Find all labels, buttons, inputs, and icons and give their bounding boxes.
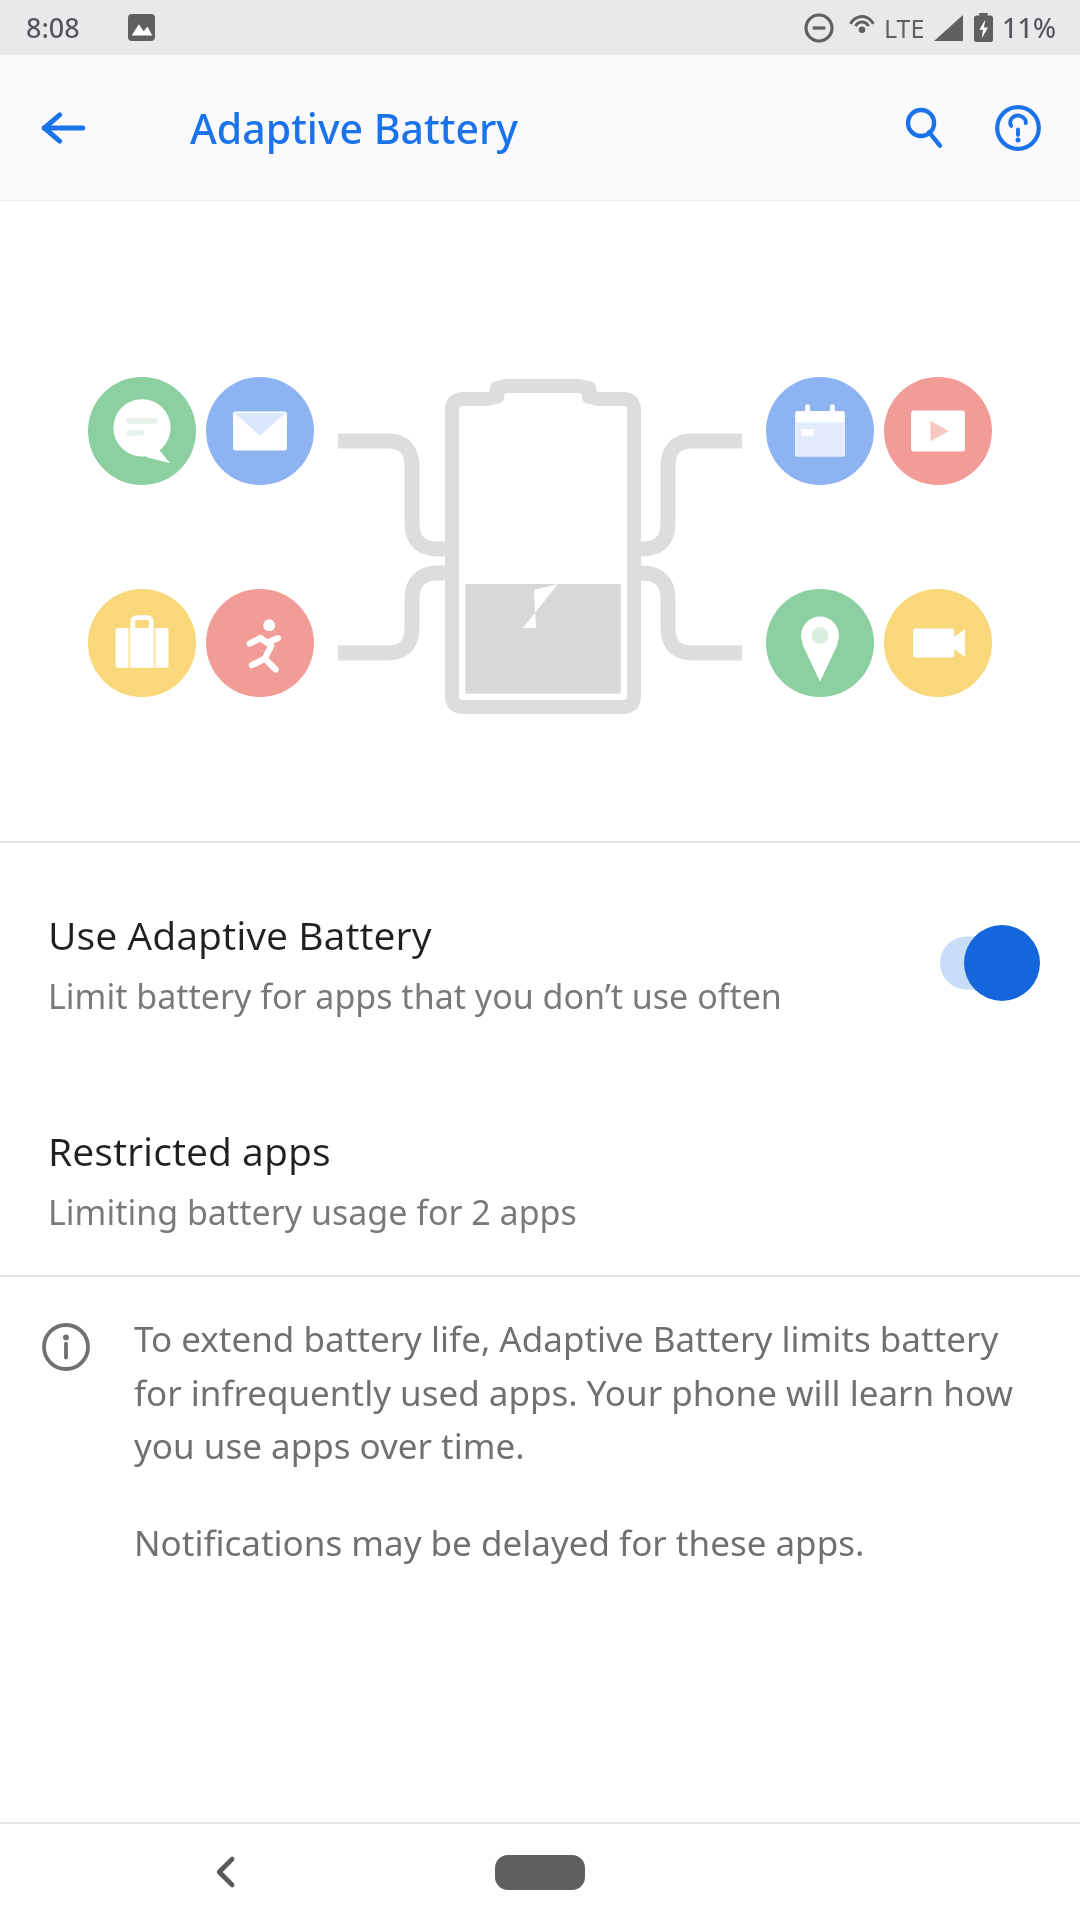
button[interactable]: Back: [190, 1836, 262, 1908]
other: Mail: [206, 377, 314, 485]
other: Play: [884, 377, 992, 485]
button[interactable]: Use Adaptive Battery: [0, 843, 1080, 1083]
button[interactable]: Restricted apps: [0, 1083, 1080, 1275]
other: Fitness: [206, 589, 314, 697]
staticText: Limiting battery usage for 2 apps: [48, 1189, 577, 1235]
staticText: LTE: [884, 11, 925, 45]
button[interactable]: Use Adaptive Battery toggle, on: [934, 917, 1046, 1009]
button[interactable]: Help: [978, 88, 1058, 168]
other: Work: [88, 589, 196, 697]
staticText: Use Adaptive Battery: [48, 908, 432, 961]
staticText: Notifications may be delayed for these a…: [134, 1519, 865, 1567]
staticText: Restricted apps: [48, 1124, 331, 1177]
staticText: To extend battery life, Adaptive Battery…: [134, 1315, 1040, 1469]
button[interactable]: Home: [455, 1847, 625, 1897]
staticText: Limit battery for apps that you don’t us…: [48, 973, 782, 1019]
other: Calendar: [766, 377, 874, 485]
button[interactable]: Back: [28, 93, 98, 163]
staticText: Adaptive Battery: [190, 100, 518, 156]
button[interactable]: Search: [884, 88, 964, 168]
other: Maps: [766, 589, 874, 697]
other: Video: [884, 589, 992, 697]
other: Messages: [88, 377, 196, 485]
staticText: 11%: [1002, 9, 1056, 46]
staticText: 8:08: [26, 9, 80, 46]
